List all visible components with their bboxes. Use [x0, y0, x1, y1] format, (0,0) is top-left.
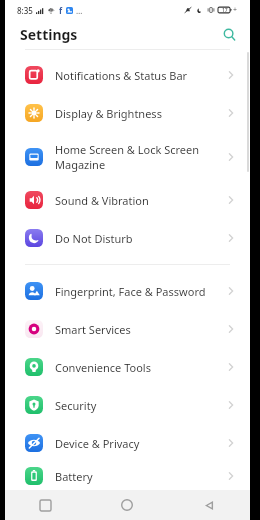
- staticText: Home Screen & Lock Screen Magazine: [55, 142, 220, 172]
- button[interactable]: Smart Services: [5, 310, 250, 348]
- button[interactable]: Notifications & Status Bar: [5, 56, 250, 94]
- button[interactable]: Security: [5, 386, 250, 424]
- staticText: 17: [222, 7, 228, 14]
- button[interactable]: Home Screen & Lock Screen Magazine: [5, 132, 250, 181]
- staticText: Do Not Disturb: [55, 231, 220, 246]
- button[interactable]: Search: [218, 23, 240, 45]
- staticText: 8:35: [17, 5, 33, 16]
- button[interactable]: Display & Brightness: [5, 94, 250, 132]
- button[interactable]: Home: [86, 490, 168, 520]
- staticText: Sound & Vibration: [55, 193, 220, 208]
- staticText: Battery: [55, 469, 220, 484]
- button[interactable]: Recent apps: [5, 490, 86, 520]
- staticText: +: [233, 5, 238, 15]
- button[interactable]: Fingerprint, Face & Password: [5, 272, 250, 310]
- button[interactable]: Sound & Vibration: [5, 181, 250, 219]
- staticText: f: [59, 5, 63, 16]
- staticText: Fingerprint, Face & Password: [55, 284, 220, 299]
- button[interactable]: Do Not Disturb: [5, 219, 250, 257]
- staticText: …: [76, 5, 83, 16]
- staticText: Smart Services: [55, 322, 220, 337]
- staticText: Display & Brightness: [55, 106, 220, 121]
- staticText: Device & Privacy: [55, 436, 220, 451]
- button[interactable]: Battery: [5, 462, 250, 490]
- button[interactable]: Back: [168, 490, 250, 520]
- staticText: Notifications & Status Bar: [55, 68, 220, 83]
- button[interactable]: Convenience Tools: [5, 348, 250, 386]
- button[interactable]: Device & Privacy: [5, 424, 250, 462]
- staticText: Convenience Tools: [55, 360, 220, 375]
- staticText: Settings: [20, 25, 78, 44]
- staticText: Security: [55, 398, 220, 413]
